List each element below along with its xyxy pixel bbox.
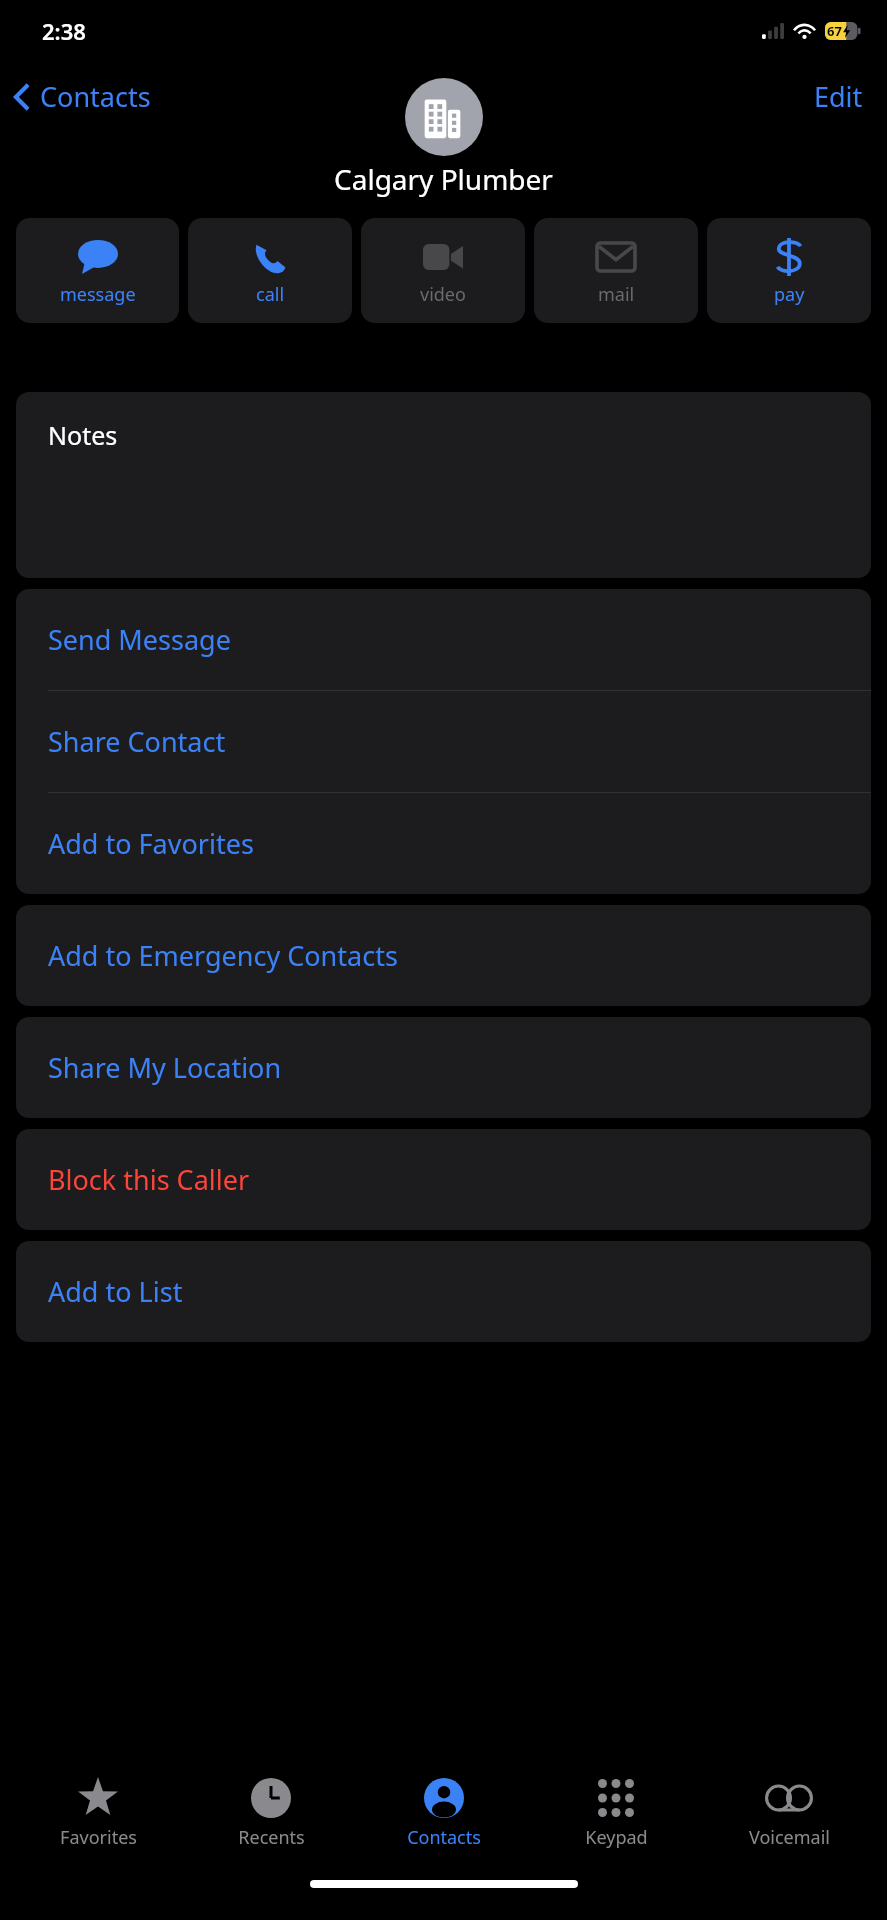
button[interactable]: Contacts [369,1774,519,1850]
button[interactable]: Keypad [541,1774,691,1850]
staticText: Share Contact [48,723,226,760]
button[interactable]: pay [707,218,871,323]
staticText: call [256,282,285,307]
button[interactable]: Add to List [16,1241,871,1342]
staticText: Contacts [40,78,151,115]
button[interactable]: call [188,218,352,323]
button[interactable]: Notes [16,392,871,578]
staticText: Keypad [585,1825,648,1850]
button[interactable]: mail [534,218,698,323]
staticText: Block this Caller [48,1161,250,1198]
staticText: Send Message [48,621,231,658]
button[interactable]: video [361,218,525,323]
button[interactable]: Contact photo [405,78,483,156]
staticText: Favorites [60,1825,137,1850]
button[interactable]: Contacts [0,72,163,121]
staticText: 2:38 [42,16,86,46]
staticText: Add to Emergency Contacts [48,937,398,974]
button[interactable]: Share Contact [16,691,871,792]
button[interactable]: Favorites [23,1774,173,1850]
staticText: Recents [238,1825,305,1850]
button[interactable]: Share My Location [16,1017,871,1118]
staticText: Notes [48,418,118,452]
button[interactable]: Block this Caller [16,1129,871,1230]
button[interactable]: message [16,218,179,323]
staticText: Contacts [407,1825,481,1850]
staticText: message [60,282,136,307]
staticText: Calgary Plumber [334,160,553,198]
staticText: Share My Location [48,1049,282,1086]
staticText: Add to Favorites [48,825,254,862]
staticText: pay [774,282,805,307]
staticText: Edit [814,78,863,115]
staticText: Voicemail [749,1825,830,1850]
staticText: 67 [827,22,842,40]
staticText: Add to List [48,1273,183,1310]
staticText: video [420,282,466,307]
button[interactable]: Edit [798,72,887,121]
staticText: mail [598,282,635,307]
button[interactable]: Voicemail [714,1774,864,1850]
button[interactable]: Add to Favorites [16,793,871,894]
button[interactable]: Add to Emergency Contacts [16,905,871,1006]
button[interactable]: Send Message [16,589,871,690]
button[interactable]: Recents [196,1774,346,1850]
